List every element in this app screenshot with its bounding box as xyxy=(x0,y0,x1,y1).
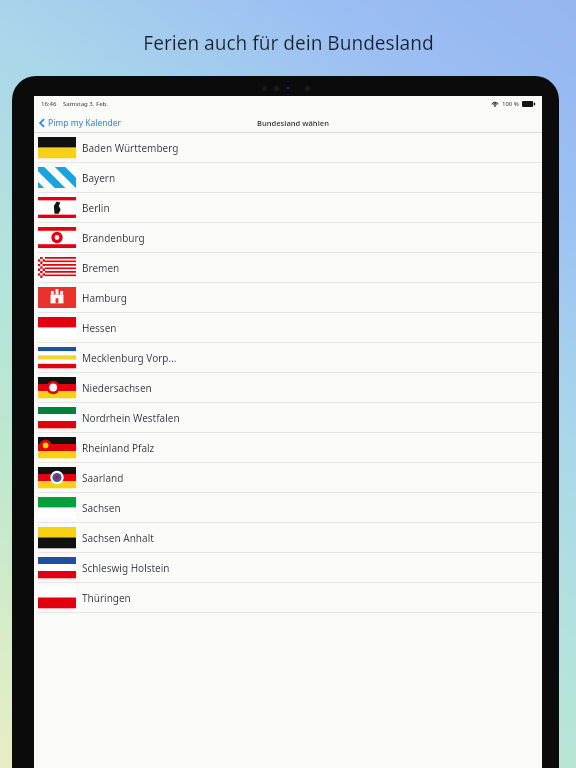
other: Hamburg Flagge xyxy=(38,287,76,308)
other: Mecklenburg Vorp… Flagge xyxy=(38,347,76,368)
staticText: Bremen xyxy=(82,261,120,275)
button[interactable]: Berlin Flagge xyxy=(34,193,542,222)
other: Saarland Flagge xyxy=(38,467,76,488)
other: Berlin Flagge xyxy=(38,197,76,218)
other: Thüringen Flagge xyxy=(38,587,76,608)
staticText: Hessen xyxy=(82,321,117,335)
button[interactable]: Thüringen Flagge xyxy=(34,583,542,612)
staticText: Baden Württemberg xyxy=(82,141,179,155)
staticText: Nordrhein Westfalen xyxy=(82,411,180,425)
staticText: Sachsen xyxy=(82,501,121,515)
button[interactable]: Hamburg Flagge xyxy=(34,283,542,312)
other: Schleswig Holstein Flagge xyxy=(38,557,76,578)
staticText: Hamburg xyxy=(82,291,127,305)
staticText: Saarland xyxy=(82,471,124,485)
staticText: 100 % xyxy=(502,100,519,108)
staticText: Bayern xyxy=(82,171,116,185)
other: Bremen Flagge xyxy=(38,257,76,278)
button[interactable]: Hessen Flagge xyxy=(34,313,542,342)
other: Baden Württemberg Flagge xyxy=(38,137,76,158)
staticText: Bundesland wählen xyxy=(257,118,329,128)
staticText: Niedersachsen xyxy=(82,381,152,395)
staticText: Berlin xyxy=(82,201,110,215)
staticText: Pimp my Kalender xyxy=(48,117,122,129)
other: Bayern Flagge xyxy=(38,167,76,188)
other: Brandenburg Flagge xyxy=(38,227,76,248)
other: Niedersachsen Flagge xyxy=(38,377,76,398)
staticText: Thüringen xyxy=(82,591,131,605)
other: Nordrhein Westfalen Flagge xyxy=(38,407,76,428)
button[interactable]: Saarland Flagge xyxy=(34,463,542,492)
staticText: Samstag 3. Feb. xyxy=(63,100,108,108)
staticText: Mecklenburg Vorp… xyxy=(82,351,177,365)
button[interactable]: Bayern Flagge xyxy=(34,163,542,192)
button[interactable]: Pimp my Kalender xyxy=(37,114,124,132)
other: Hessen Flagge xyxy=(38,317,76,338)
staticText: Ferien auch für dein Bundesland xyxy=(143,30,434,56)
staticText: Rheinland Pfalz xyxy=(82,441,155,455)
other: Sachsen Anhalt Flagge xyxy=(38,527,76,548)
button[interactable]: Rheinland Pfalz Flagge xyxy=(34,433,542,462)
button[interactable]: Sachsen Anhalt Flagge xyxy=(34,523,542,552)
staticText: Sachsen Anhalt xyxy=(82,531,154,545)
button[interactable]: Baden Württemberg Flagge xyxy=(34,133,542,162)
button[interactable]: Mecklenburg Vorp… Flagge xyxy=(34,343,542,372)
button[interactable]: Brandenburg Flagge xyxy=(34,223,542,252)
button[interactable]: Bremen Flagge xyxy=(34,253,542,282)
staticText: Schleswig Holstein xyxy=(82,561,170,575)
button[interactable]: Sachsen Flagge xyxy=(34,493,542,522)
button[interactable]: Nordrhein Westfalen Flagge xyxy=(34,403,542,432)
staticText: 16:46 xyxy=(41,100,57,108)
other: Rheinland Pfalz Flagge xyxy=(38,437,76,458)
button[interactable]: Schleswig Holstein Flagge xyxy=(34,553,542,582)
button[interactable]: Niedersachsen Flagge xyxy=(34,373,542,402)
other: Sachsen Flagge xyxy=(38,497,76,518)
staticText: Brandenburg xyxy=(82,231,145,245)
